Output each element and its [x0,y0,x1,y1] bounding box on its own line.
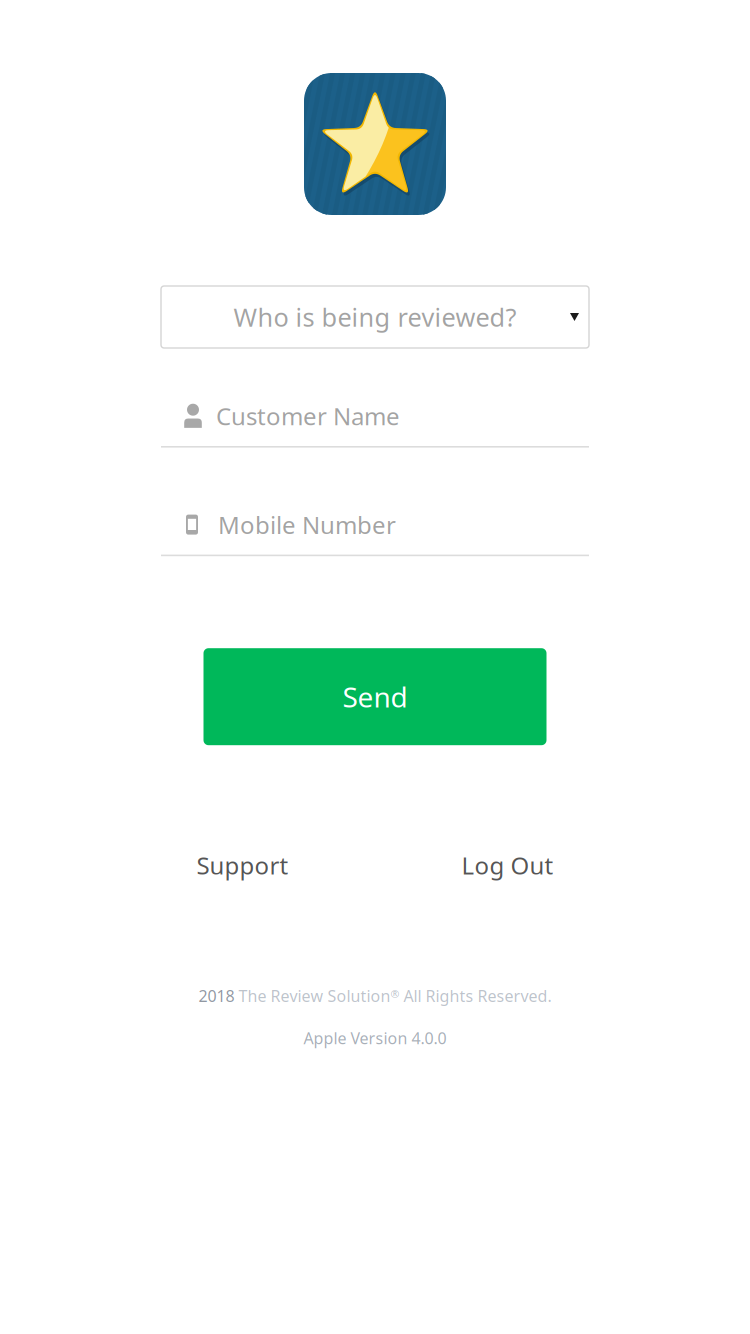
button[interactable]: Support [177,842,307,888]
staticText: Customer Name [216,400,400,432]
staticText: 2018 [198,985,234,1006]
staticText: Log Out [461,849,553,881]
staticText: Apple Version 4.0.0 [303,1027,446,1049]
staticText: Mobile Number [218,509,396,541]
button[interactable]: Mobile Number [161,495,589,556]
staticText: Send [342,678,407,715]
button[interactable]: Customer Name [161,386,589,448]
button[interactable]: Send [203,648,546,745]
button[interactable]: Log Out [442,842,572,888]
staticText: Support [196,849,288,881]
staticText: The Review Solution® All Rights Reserved… [234,985,551,1006]
staticText: Who is being reviewed? [233,300,516,334]
button[interactable]: Who is being reviewed? [161,286,589,348]
